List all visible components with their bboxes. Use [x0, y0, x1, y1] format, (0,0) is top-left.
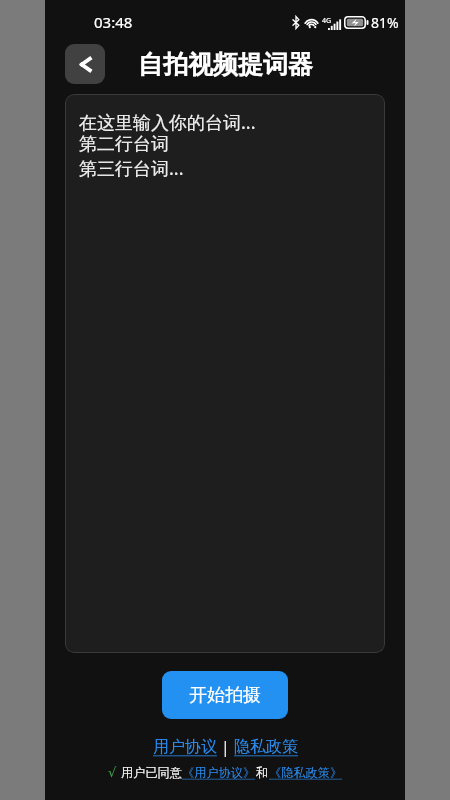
staticText: 隐私政策 [234, 737, 298, 757]
button[interactable]: √ [108, 765, 343, 780]
staticText: 《用户协议》 [182, 765, 256, 780]
button[interactable]: 用户协议 [153, 737, 217, 757]
staticText: 81% [371, 13, 399, 32]
button[interactable]: 在这里输入你的台词... [65, 94, 385, 653]
button[interactable]: 隐私政策 [234, 737, 298, 757]
staticText: | [221, 736, 230, 758]
staticText: √ [108, 765, 117, 780]
staticText: 用户已同意 [121, 765, 182, 780]
staticText: 开始拍摄 [189, 684, 261, 707]
staticText: 《隐私政策》 [269, 765, 343, 780]
staticText: 03:48 [94, 12, 133, 32]
staticText: 第二行台词 [79, 133, 169, 156]
staticText: 在这里输入你的台词... [79, 110, 256, 133]
staticText: 第三行台词... [79, 156, 184, 179]
staticText: 4G [322, 16, 332, 26]
button[interactable]: Back [65, 44, 105, 84]
button[interactable]: 开始拍摄 [162, 671, 288, 719]
staticText: 和 [256, 765, 269, 780]
staticText: 用户协议 [153, 737, 217, 757]
staticText: 自拍视频提词器 [138, 49, 313, 80]
